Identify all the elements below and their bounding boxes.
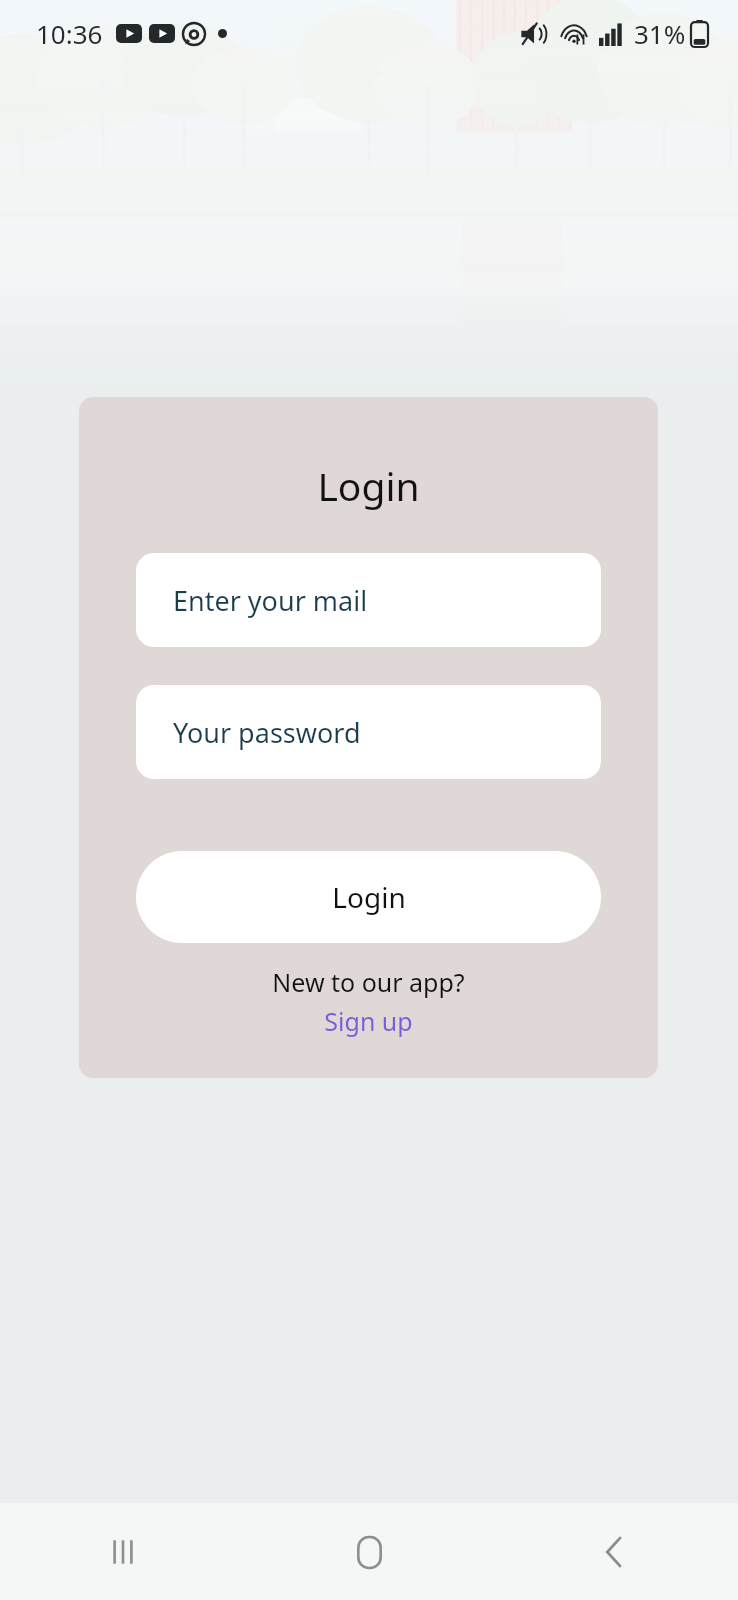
button[interactable]: Back: [567, 1504, 663, 1600]
staticText: Sign up: [324, 1004, 413, 1038]
button[interactable]: Home: [321, 1504, 417, 1600]
staticText: 10:36: [36, 16, 103, 51]
button[interactable]: Sign up: [79, 1004, 658, 1038]
button[interactable]: Enter your mail: [136, 553, 601, 647]
staticText: Enter your mail: [173, 582, 368, 619]
button[interactable]: Your password: [136, 685, 601, 779]
staticText: New to our app?: [79, 965, 658, 999]
staticText: Login: [79, 459, 658, 512]
staticText: Your password: [173, 714, 361, 751]
button[interactable]: Recent apps: [75, 1504, 171, 1600]
staticText: 31%: [634, 16, 686, 51]
button[interactable]: Login: [136, 851, 601, 943]
staticText: Login: [332, 878, 406, 916]
